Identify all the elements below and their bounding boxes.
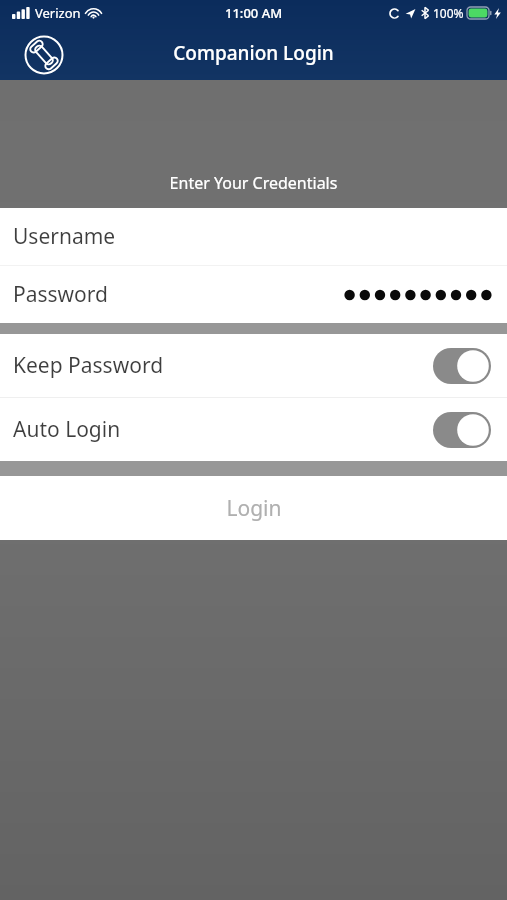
staticText: Auto Login	[13, 415, 121, 444]
staticText: Login	[226, 494, 282, 523]
button[interactable]: Keep Password	[0, 334, 507, 397]
staticText: 11:00 AM	[225, 4, 283, 22]
staticText: Companion Login	[0, 40, 507, 66]
button[interactable]: Login	[0, 476, 507, 540]
staticText: Verizon	[35, 4, 81, 22]
staticText: Enter Your Credentials	[0, 172, 507, 194]
button[interactable]: Call	[22, 33, 66, 77]
staticText: Password	[13, 280, 108, 309]
button[interactable]: Password	[0, 266, 507, 323]
staticText: 100%	[433, 5, 464, 21]
button[interactable]: Username	[0, 208, 507, 265]
staticText: Username	[13, 222, 116, 251]
staticText: Keep Password	[13, 351, 164, 380]
button[interactable]: Auto Login	[0, 398, 507, 461]
